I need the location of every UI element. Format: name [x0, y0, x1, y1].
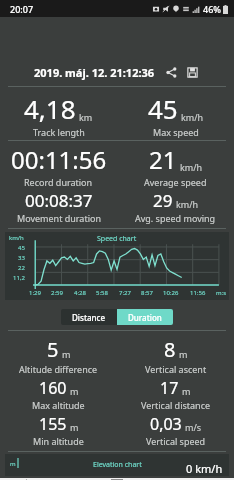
staticText: Altitude difference: [19, 363, 98, 375]
button[interactable]: Distance: [61, 309, 117, 325]
staticText: 29: [153, 189, 173, 212]
staticText: 11,2: [13, 274, 25, 282]
staticText: Min altitude: [33, 435, 84, 447]
staticText: Distance: [72, 312, 106, 323]
staticText: 1:29: [29, 289, 41, 297]
staticText: 00:11:56: [11, 143, 107, 176]
staticText: 45: [148, 91, 178, 126]
staticText: m: [182, 385, 191, 397]
staticText: 0,03: [150, 413, 182, 435]
staticText: Vertical distance: [141, 399, 211, 411]
staticText: m: [70, 385, 79, 397]
staticText: km: [79, 111, 93, 123]
staticText: 46%: [203, 3, 221, 15]
staticText: m: [10, 460, 16, 468]
staticText: m:s: [216, 289, 227, 297]
staticText: 21: [149, 143, 177, 176]
staticText: 10:26: [163, 289, 179, 297]
staticText: 20:07: [10, 3, 34, 15]
staticText: 5:58: [96, 289, 108, 297]
staticText: 45: [18, 244, 25, 252]
staticText: 2019. máj. 12. 21:12:36: [34, 65, 155, 80]
staticText: 0 km/h: [186, 461, 223, 476]
button[interactable]: Érintse meg itt a teljes képernyő kitölt…: [0, 478, 234, 480]
staticText: Record duration: [24, 176, 93, 188]
staticText: km/h: [176, 198, 199, 210]
button[interactable]: Duration: [117, 309, 173, 325]
staticText: km/h: [9, 234, 24, 242]
staticText: 17: [160, 377, 179, 399]
staticText: Vertical speed: [146, 435, 206, 447]
staticText: Max speed: [153, 126, 199, 138]
button[interactable]: Share: [163, 64, 179, 80]
staticText: 8: [164, 336, 176, 363]
staticText: m: [70, 421, 79, 433]
staticText: Elevation chart: [93, 460, 142, 470]
staticText: 4:28: [74, 289, 86, 297]
staticText: Max altitude: [32, 399, 85, 411]
staticText: km/h: [180, 161, 203, 173]
staticText: 8:57: [141, 289, 153, 297]
button[interactable]: km/h: [5, 232, 229, 300]
staticText: m: [179, 348, 188, 360]
staticText: 11:56: [190, 289, 206, 297]
staticText: 155: [39, 413, 67, 435]
staticText: Duration: [128, 312, 162, 323]
staticText: 33: [18, 254, 25, 262]
staticText: 00:08:37: [25, 189, 93, 212]
staticText: 2:59: [51, 289, 63, 297]
staticText: 160: [39, 377, 67, 399]
staticText: Speed chart: [97, 234, 137, 244]
staticText: Érintse meg itt a teljes képernyő kitölt…: [23, 478, 212, 480]
staticText: Movement duration: [17, 212, 101, 224]
staticText: Track length: [33, 126, 85, 138]
staticText: 5: [47, 336, 59, 363]
button[interactable]: Save: [184, 64, 200, 80]
staticText: 7:27: [119, 289, 131, 297]
staticText: m: [62, 348, 71, 360]
staticText: Avg. speed moving: [135, 212, 216, 224]
staticText: Average speed: [144, 176, 207, 188]
staticText: km/h: [181, 111, 204, 123]
staticText: Vertical ascent: [145, 363, 207, 375]
staticText: 4,18: [24, 91, 76, 126]
staticText: 22: [18, 264, 25, 272]
staticText: m/s: [185, 421, 202, 433]
button[interactable]: m: [5, 454, 229, 476]
